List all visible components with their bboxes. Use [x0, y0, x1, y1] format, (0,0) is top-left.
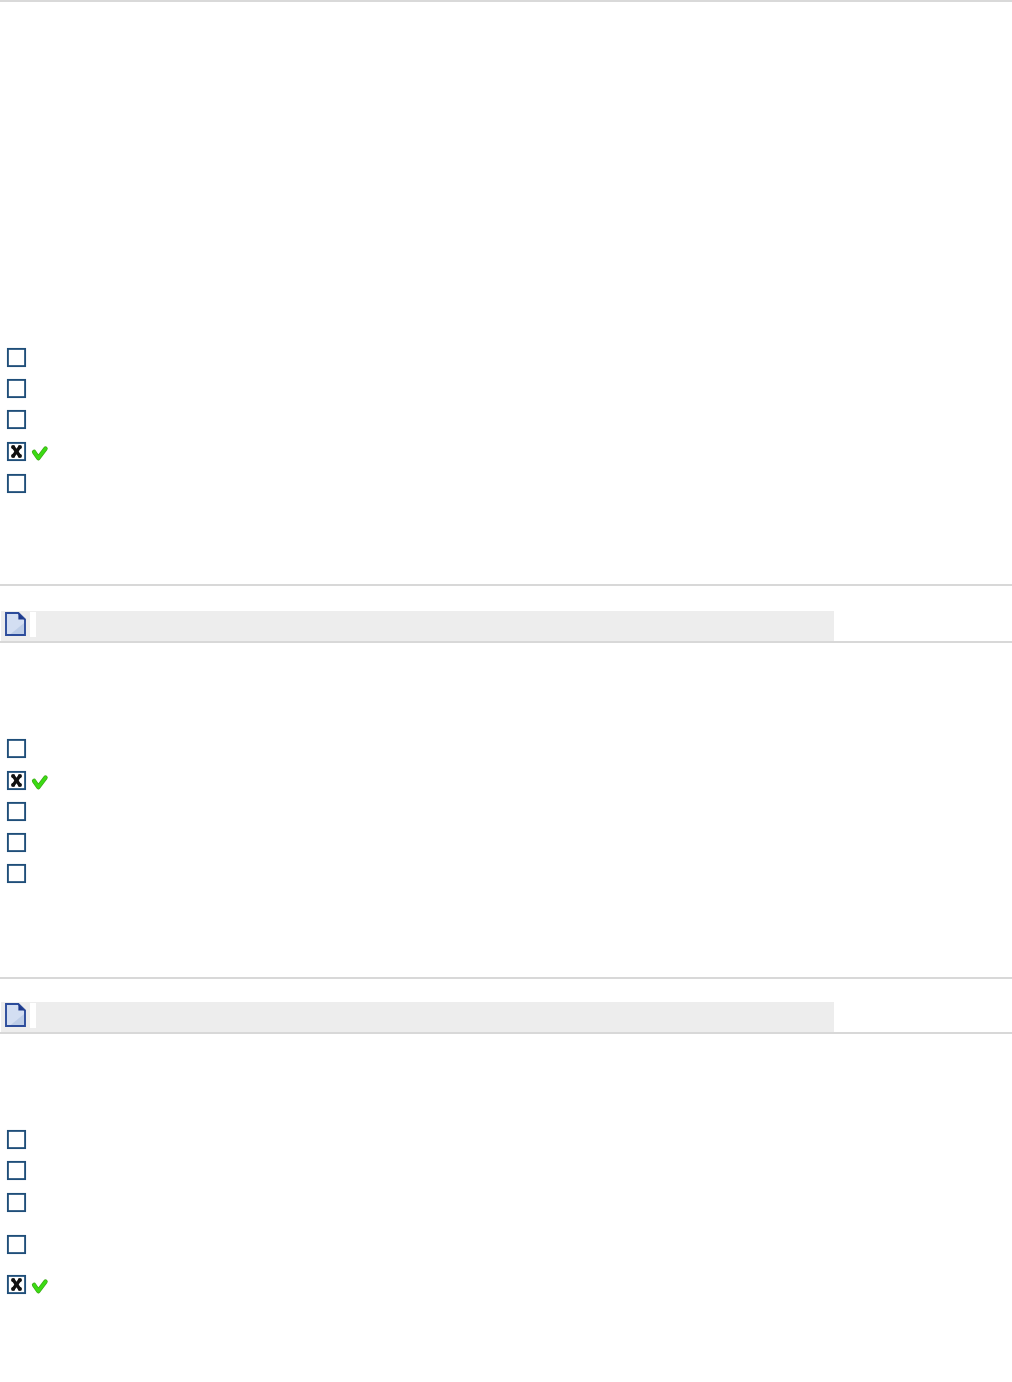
button[interactable]: Selected answer	[7, 442, 26, 461]
button[interactable]: Selected answer	[7, 1275, 26, 1294]
other: Document	[6, 613, 25, 635]
other: Document	[6, 1004, 25, 1026]
button[interactable]: Answer option	[7, 379, 26, 398]
button[interactable]: Answer option	[7, 1161, 26, 1180]
button[interactable]: Answer option	[7, 1130, 26, 1149]
button[interactable]: Answer option	[7, 1235, 26, 1254]
button[interactable]: Answer option	[7, 833, 26, 852]
button[interactable]: Question section	[1, 611, 834, 641]
button[interactable]: Selected answer	[7, 771, 26, 790]
button[interactable]: Answer option	[7, 348, 26, 367]
button[interactable]: Answer option	[7, 864, 26, 883]
button[interactable]: Answer option	[7, 474, 26, 493]
button[interactable]: Answer option	[7, 802, 26, 821]
button[interactable]: Answer option	[7, 739, 26, 758]
button[interactable]: Question section	[1, 1002, 834, 1032]
button[interactable]: Answer option	[7, 410, 26, 429]
button[interactable]: Answer option	[7, 1193, 26, 1212]
